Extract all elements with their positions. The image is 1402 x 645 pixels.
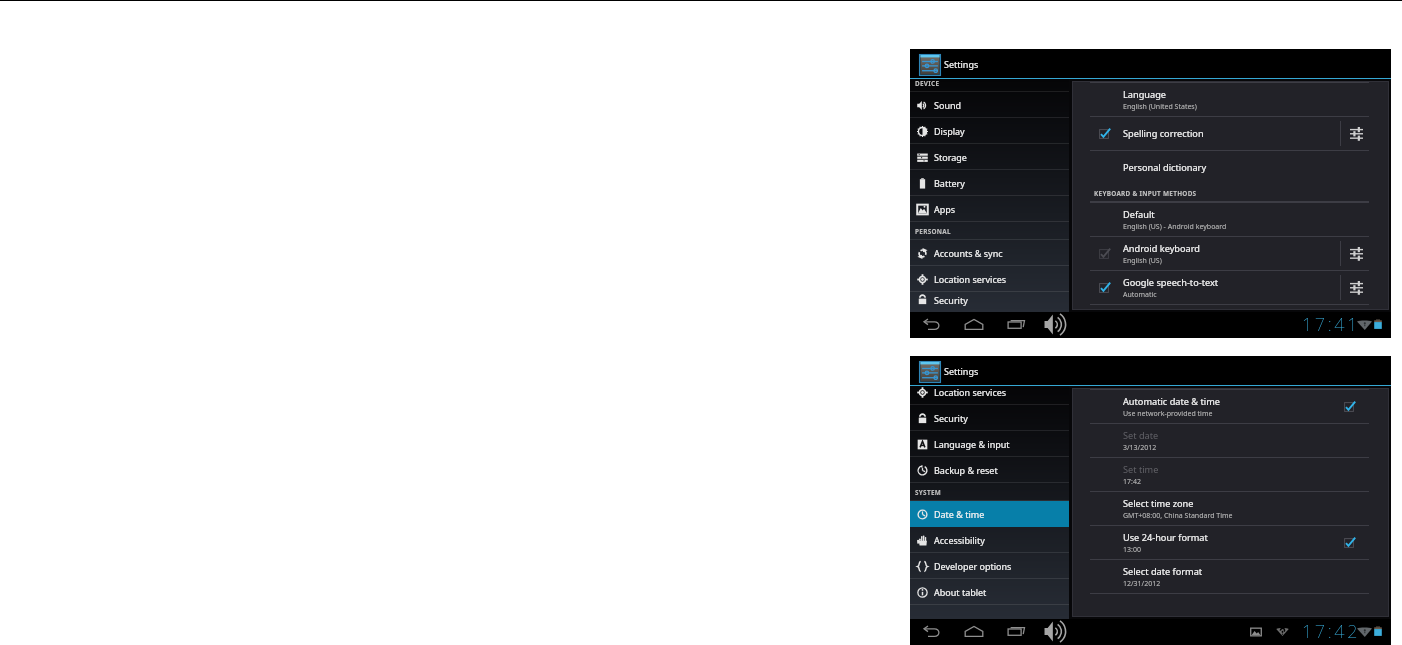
button[interactable]: Security [910,405,1069,431]
staticText: Battery [934,177,965,189]
staticText: Storage [934,151,967,163]
staticText: Settings [944,58,979,70]
button[interactable]: Input method settings [1350,237,1363,270]
staticText: 13:00 [1123,545,1141,555]
button[interactable]: Default [1073,203,1388,236]
button[interactable]: Storage [910,144,1069,170]
staticText: Language & input [934,438,1010,450]
button[interactable]: Accessibility [910,527,1069,553]
button[interactable]: Recent apps [1004,312,1028,337]
staticText: Accessibility [934,534,985,546]
button[interactable]: Settings [915,49,972,78]
staticText: 17:42 [1302,619,1360,644]
staticText: Personal dictionary [1123,161,1207,174]
button[interactable]: Volume [1043,312,1071,337]
button[interactable]: Home [962,312,986,337]
button[interactable]: Volume [1043,619,1071,644]
staticText: 12/31/2012 [1123,579,1161,589]
staticText: Default [1123,208,1155,221]
button[interactable]: Use 24-hour format [1073,526,1388,559]
button[interactable]: Select date format [1073,560,1388,593]
button[interactable]: Spelling correction [1073,117,1388,150]
button[interactable]: Back [920,619,944,644]
staticText: Security [934,294,968,306]
staticText: Display [934,125,965,137]
button[interactable]: Android keyboard [1073,237,1388,270]
staticText: Set date [1123,429,1159,442]
other: Wi-Fi [1356,312,1372,337]
button[interactable]: Input method settings [1350,271,1363,304]
button[interactable]: 17:41 [1302,312,1362,337]
button[interactable]: Location services [910,379,1069,405]
staticText: Use 24-hour format [1123,531,1208,544]
staticText: Location services [934,386,1007,398]
button[interactable]: Language & input [910,431,1069,457]
button[interactable]: Back [920,312,944,337]
button[interactable]: Sound [910,92,1069,118]
button[interactable]: Security [910,292,1069,307]
staticText: Use network-provided time [1123,409,1213,419]
staticText: Backup & reset [934,464,998,476]
staticText: Spelling correction [1123,127,1204,140]
staticText: Google speech-to-text [1123,276,1219,289]
button[interactable]: Automatic date & time [1073,390,1388,423]
button[interactable]: Accounts & sync [910,240,1069,266]
staticText: Automatic [1123,290,1157,300]
button[interactable]: Recent apps [1004,619,1028,644]
staticText: KEYBOARD & INPUT METHODS [1094,189,1197,198]
button[interactable]: Settings [915,356,972,385]
staticText: Date & time [934,508,985,520]
button[interactable]: Backup & reset [910,457,1069,483]
staticText: English (US) [1123,256,1162,266]
button[interactable]: Display [910,118,1069,144]
staticText: Apps [934,203,956,215]
staticText: SYSTEM [915,488,942,497]
staticText: Automatic date & time [1123,395,1220,408]
staticText: 3/13/2012 [1123,443,1157,453]
button[interactable]: Language [1073,83,1388,116]
other: Screenshot captured [1246,619,1266,644]
staticText: Security [934,412,968,424]
staticText: Developer options [934,560,1012,572]
staticText: Accounts & sync [934,247,1003,259]
button[interactable]: Personal dictionary [1073,151,1388,184]
staticText: Language [1123,88,1166,101]
staticText: 17:41 [1302,312,1360,337]
button[interactable]: Apps [910,196,1069,222]
button[interactable]: Developer options [910,553,1069,579]
button[interactable]: About tablet [910,579,1069,605]
staticText: GMT+08:00, China Standard Time [1123,511,1233,521]
staticText: English (United States) [1123,102,1197,112]
staticText: Android keyboard [1123,242,1200,255]
other: Wi-Fi no internet [1272,619,1292,644]
staticText: About tablet [934,586,987,598]
staticText: 17:42 [1123,477,1141,487]
staticText: Set time [1123,463,1159,476]
staticText: DEVICE [915,79,940,88]
other: Battery [1373,619,1383,644]
button[interactable]: 17:42 [1302,619,1362,644]
staticText: Select time zone [1123,497,1194,510]
button[interactable]: Input method settings [1350,117,1363,150]
other: Battery [1373,312,1383,337]
button[interactable]: Location services [910,266,1069,292]
staticText: Select date format [1123,565,1203,578]
button[interactable]: Home [962,619,986,644]
staticText: English (US) - Android keyboard [1123,222,1227,232]
staticText: Sound [934,99,962,111]
button[interactable]: Set date [1073,424,1388,457]
other: Wi-Fi [1356,619,1372,644]
button[interactable]: Google speech-to-text [1073,271,1388,304]
button[interactable]: Select time zone [1073,492,1388,525]
staticText: Location services [934,273,1007,285]
button[interactable]: Battery [910,170,1069,196]
staticText: Settings [944,365,979,377]
button[interactable]: Set time [1073,458,1388,491]
staticText: PERSONAL [915,227,951,236]
button[interactable]: Date & time [910,501,1069,527]
